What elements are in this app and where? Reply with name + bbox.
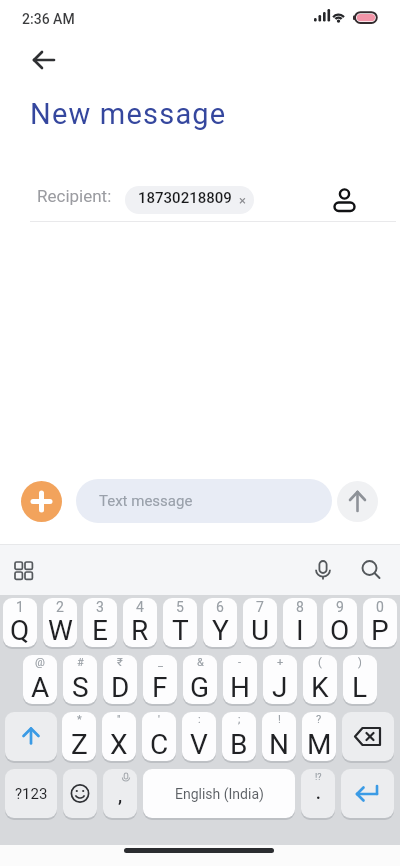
- staticText: :: [198, 713, 201, 726]
- staticText: 0: [376, 599, 384, 615]
- button[interactable]: [357, 556, 385, 584]
- button[interactable]: 6: [203, 598, 237, 647]
- staticText: B: [230, 728, 248, 761]
- staticText: O: [330, 614, 350, 647]
- staticText: _: [158, 656, 163, 669]
- button[interactable]: ₹: [103, 655, 137, 704]
- staticText: K: [311, 671, 329, 704]
- button[interactable]: ;: [222, 712, 256, 761]
- button[interactable]: !?: [301, 769, 335, 818]
- staticText: !: [278, 713, 281, 726]
- staticText: V: [190, 728, 208, 761]
- staticText: G: [190, 671, 210, 704]
- button[interactable]: (: [303, 655, 337, 704]
- staticText: 7: [256, 599, 264, 615]
- staticText: ?123: [15, 785, 48, 803]
- staticText: Y: [212, 614, 229, 647]
- button[interactable]: [24, 44, 60, 80]
- staticText: ): [358, 656, 362, 669]
- staticText: (: [318, 656, 322, 669]
- staticText: E: [92, 614, 108, 647]
- staticText: 3: [96, 599, 104, 615]
- button[interactable]: 18730218809: [125, 186, 254, 214]
- button[interactable]: 8: [283, 598, 317, 647]
- staticText: English (India): [175, 786, 264, 802]
- button[interactable]: 0: [363, 598, 397, 647]
- button[interactable]: 2: [43, 598, 77, 647]
- button[interactable]: [337, 481, 378, 522]
- staticText: ₹: [117, 656, 123, 669]
- staticText: S: [72, 671, 89, 704]
- button[interactable]: 4: [123, 598, 157, 647]
- staticText: ?: [316, 713, 322, 726]
- staticText: !?: [315, 772, 322, 783]
- staticText: 2:36 AM: [22, 11, 75, 27]
- staticText: ": [117, 713, 121, 726]
- staticText: 1: [16, 599, 24, 615]
- staticText: 6: [216, 599, 224, 615]
- button[interactable]: :: [182, 712, 216, 761]
- button[interactable]: ": [102, 712, 136, 761]
- staticText: @: [35, 656, 45, 669]
- button[interactable]: ?123: [5, 769, 57, 818]
- staticText: M: [307, 728, 332, 761]
- button[interactable]: ?: [302, 712, 336, 761]
- staticText: H: [230, 671, 250, 704]
- staticText: .: [316, 784, 321, 803]
- button[interactable]: [5, 712, 57, 761]
- staticText: 8: [296, 599, 304, 615]
- staticText: ;: [238, 713, 241, 726]
- button[interactable]: !: [262, 712, 296, 761]
- staticText: W: [48, 614, 73, 647]
- button[interactable]: &: [183, 655, 217, 704]
- staticText: X: [110, 728, 128, 761]
- button[interactable]: #: [63, 655, 97, 704]
- button[interactable]: English (India): [143, 769, 295, 818]
- staticText: D: [111, 671, 130, 704]
- staticText: 2: [56, 599, 64, 615]
- staticText: 18730218809: [138, 189, 232, 207]
- button[interactable]: *: [62, 712, 96, 761]
- staticText: J: [272, 671, 288, 704]
- staticText: 9: [336, 599, 344, 615]
- staticText: R: [131, 614, 149, 647]
- staticText: F: [152, 671, 168, 704]
- staticText: L: [352, 671, 368, 704]
- staticText: *: [77, 713, 82, 726]
- staticText: Text message: [99, 492, 193, 510]
- staticText: 5: [176, 599, 184, 615]
- staticText: +: [277, 656, 284, 669]
- staticText: #: [77, 656, 84, 669]
- button[interactable]: 1: [3, 598, 37, 647]
- staticText: I: [296, 614, 304, 647]
- button[interactable]: [341, 769, 394, 818]
- button[interactable]: [342, 712, 394, 761]
- button[interactable]: 7: [243, 598, 277, 647]
- staticText: New message: [30, 97, 227, 131]
- staticText: ×: [239, 193, 246, 208]
- staticText: P: [371, 614, 389, 647]
- button[interactable]: 3: [83, 598, 117, 647]
- button[interactable]: [63, 769, 97, 818]
- staticText: Recipient:: [37, 186, 112, 206]
- button[interactable]: ,: [103, 769, 137, 818]
- staticText: ': [158, 713, 160, 726]
- button[interactable]: ): [343, 655, 377, 704]
- staticText: N: [269, 728, 289, 761]
- button[interactable]: @: [23, 655, 57, 704]
- button[interactable]: -: [223, 655, 257, 704]
- button[interactable]: [309, 556, 337, 584]
- button[interactable]: [331, 184, 359, 212]
- button[interactable]: +: [263, 655, 297, 704]
- button[interactable]: ': [142, 712, 176, 761]
- staticText: C: [150, 728, 169, 761]
- button[interactable]: 9: [323, 598, 357, 647]
- button[interactable]: _: [143, 655, 177, 704]
- button[interactable]: [21, 481, 62, 522]
- staticText: U: [251, 614, 270, 647]
- button[interactable]: 5: [163, 598, 197, 647]
- button[interactable]: [10, 557, 38, 585]
- button[interactable]: Text message: [76, 479, 332, 523]
- staticText: -: [238, 656, 242, 669]
- staticText: &: [197, 656, 204, 669]
